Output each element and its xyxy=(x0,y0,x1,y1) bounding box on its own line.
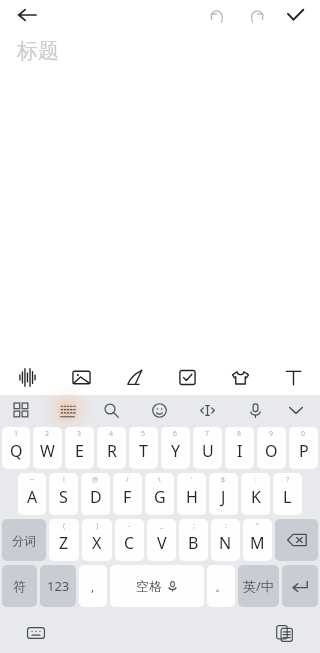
button[interactable]: : xyxy=(241,473,270,515)
button[interactable]: 9 xyxy=(257,427,286,469)
staticText: F xyxy=(123,486,132,508)
staticText: 标题 xyxy=(17,38,59,64)
button[interactable]: 2 xyxy=(33,427,62,469)
button[interactable]: Undo xyxy=(202,0,232,30)
staticText: O xyxy=(265,440,278,462)
button[interactable]: Enter xyxy=(282,565,318,607)
button[interactable]: " xyxy=(243,519,272,561)
staticText: K xyxy=(251,486,261,508)
button[interactable]: Handwriting xyxy=(108,360,161,395)
button[interactable]: Back xyxy=(13,1,41,29)
button[interactable]: Backspace xyxy=(275,519,318,561)
staticText: 分词 xyxy=(12,533,36,548)
staticText: ? xyxy=(286,475,290,485)
staticText: S xyxy=(59,486,68,508)
staticText: D xyxy=(90,486,102,508)
button[interactable]: Hide keyboard xyxy=(280,395,312,425)
button[interactable]: Redo xyxy=(242,0,272,30)
staticText: A xyxy=(27,486,38,508)
staticText: 符 xyxy=(13,578,26,594)
staticText: N xyxy=(219,532,232,554)
button[interactable]: @ xyxy=(81,473,110,515)
staticText: : xyxy=(225,521,227,531)
button[interactable]: Keyboard layouts xyxy=(8,397,34,423)
staticText: H xyxy=(186,486,198,508)
button[interactable]: 0 xyxy=(289,427,318,469)
button[interactable]: Text style xyxy=(267,360,320,395)
button[interactable]: 英/中 xyxy=(238,565,279,607)
button[interactable]: Search xyxy=(98,397,124,423)
staticText: E xyxy=(75,440,84,462)
button[interactable]: Template xyxy=(214,360,267,395)
staticText: ' xyxy=(191,475,193,485)
staticText: 空格 xyxy=(136,578,162,594)
button[interactable]: Voice xyxy=(0,360,54,395)
button[interactable]: _ xyxy=(147,519,176,561)
staticText: 123 xyxy=(47,577,70,595)
staticText: _ xyxy=(160,521,164,531)
button[interactable]: 7 xyxy=(193,427,222,469)
button[interactable]: Emoji xyxy=(146,397,172,423)
staticText: $ xyxy=(221,475,226,485)
button[interactable]: 分词 xyxy=(2,519,46,561)
button[interactable]: \ xyxy=(145,473,174,515)
staticText: 英/中 xyxy=(243,577,274,595)
staticText: T xyxy=(139,440,148,462)
button[interactable]: Voice input xyxy=(242,397,268,423)
button[interactable]: ? xyxy=(273,473,302,515)
button[interactable]: 空格 xyxy=(110,565,204,607)
button[interactable]: 5 xyxy=(129,427,158,469)
button[interactable]: Clipboard xyxy=(270,619,298,647)
button[interactable]: ! xyxy=(49,473,78,515)
button[interactable]: Checklist xyxy=(161,360,214,395)
staticText: ; xyxy=(193,521,195,531)
button[interactable]: 8 xyxy=(225,427,254,469)
button[interactable]: Done xyxy=(280,0,310,30)
button[interactable]: - xyxy=(115,519,144,561)
button[interactable]: 123 xyxy=(40,565,76,607)
button[interactable]: ) xyxy=(82,519,112,561)
button[interactable]: Cursor xyxy=(194,397,220,423)
button[interactable]: Pinyin keyboard xyxy=(52,395,82,425)
button[interactable]: ( xyxy=(49,519,79,561)
staticText: - xyxy=(128,521,131,531)
staticText: I xyxy=(237,440,243,462)
button[interactable]: 3 xyxy=(65,427,94,469)
staticText: ! xyxy=(63,475,65,485)
staticText: G xyxy=(154,486,166,508)
staticText: 2 xyxy=(45,429,50,439)
staticText: X xyxy=(92,532,102,554)
staticText: 0 xyxy=(301,429,306,439)
button[interactable]: ; xyxy=(179,519,208,561)
button[interactable]: 4 xyxy=(97,427,126,469)
button[interactable]: Image xyxy=(54,360,108,395)
button[interactable]: / xyxy=(113,473,142,515)
staticText: 8 xyxy=(237,429,242,439)
staticText: Z xyxy=(59,532,69,554)
staticText: Y xyxy=(171,440,181,462)
button[interactable]: Switch keyboard xyxy=(22,619,50,647)
staticText: , xyxy=(91,578,95,594)
button[interactable]: 1 xyxy=(2,427,30,469)
staticText: " xyxy=(256,521,259,531)
staticText: U xyxy=(202,440,214,462)
button[interactable]: $ xyxy=(209,473,238,515)
staticText: 7 xyxy=(205,429,210,439)
staticText: 5 xyxy=(141,429,146,439)
staticText: @ xyxy=(92,475,99,485)
button[interactable]: 6 xyxy=(161,427,190,469)
button[interactable]: : xyxy=(211,519,240,561)
staticText: Q xyxy=(10,440,23,462)
staticText: 4 xyxy=(109,429,114,439)
button[interactable]: 符 xyxy=(2,565,37,607)
staticText: : xyxy=(255,475,257,485)
staticText: 。 xyxy=(215,579,227,594)
button[interactable]: ~ xyxy=(18,473,46,515)
button[interactable]: 。 xyxy=(207,565,235,607)
staticText: L xyxy=(283,486,292,508)
button[interactable]: , xyxy=(79,565,107,607)
staticText: W xyxy=(40,440,55,462)
button[interactable]: ' xyxy=(177,473,206,515)
staticText: 3 xyxy=(77,429,82,439)
staticText: ~ xyxy=(30,475,35,485)
